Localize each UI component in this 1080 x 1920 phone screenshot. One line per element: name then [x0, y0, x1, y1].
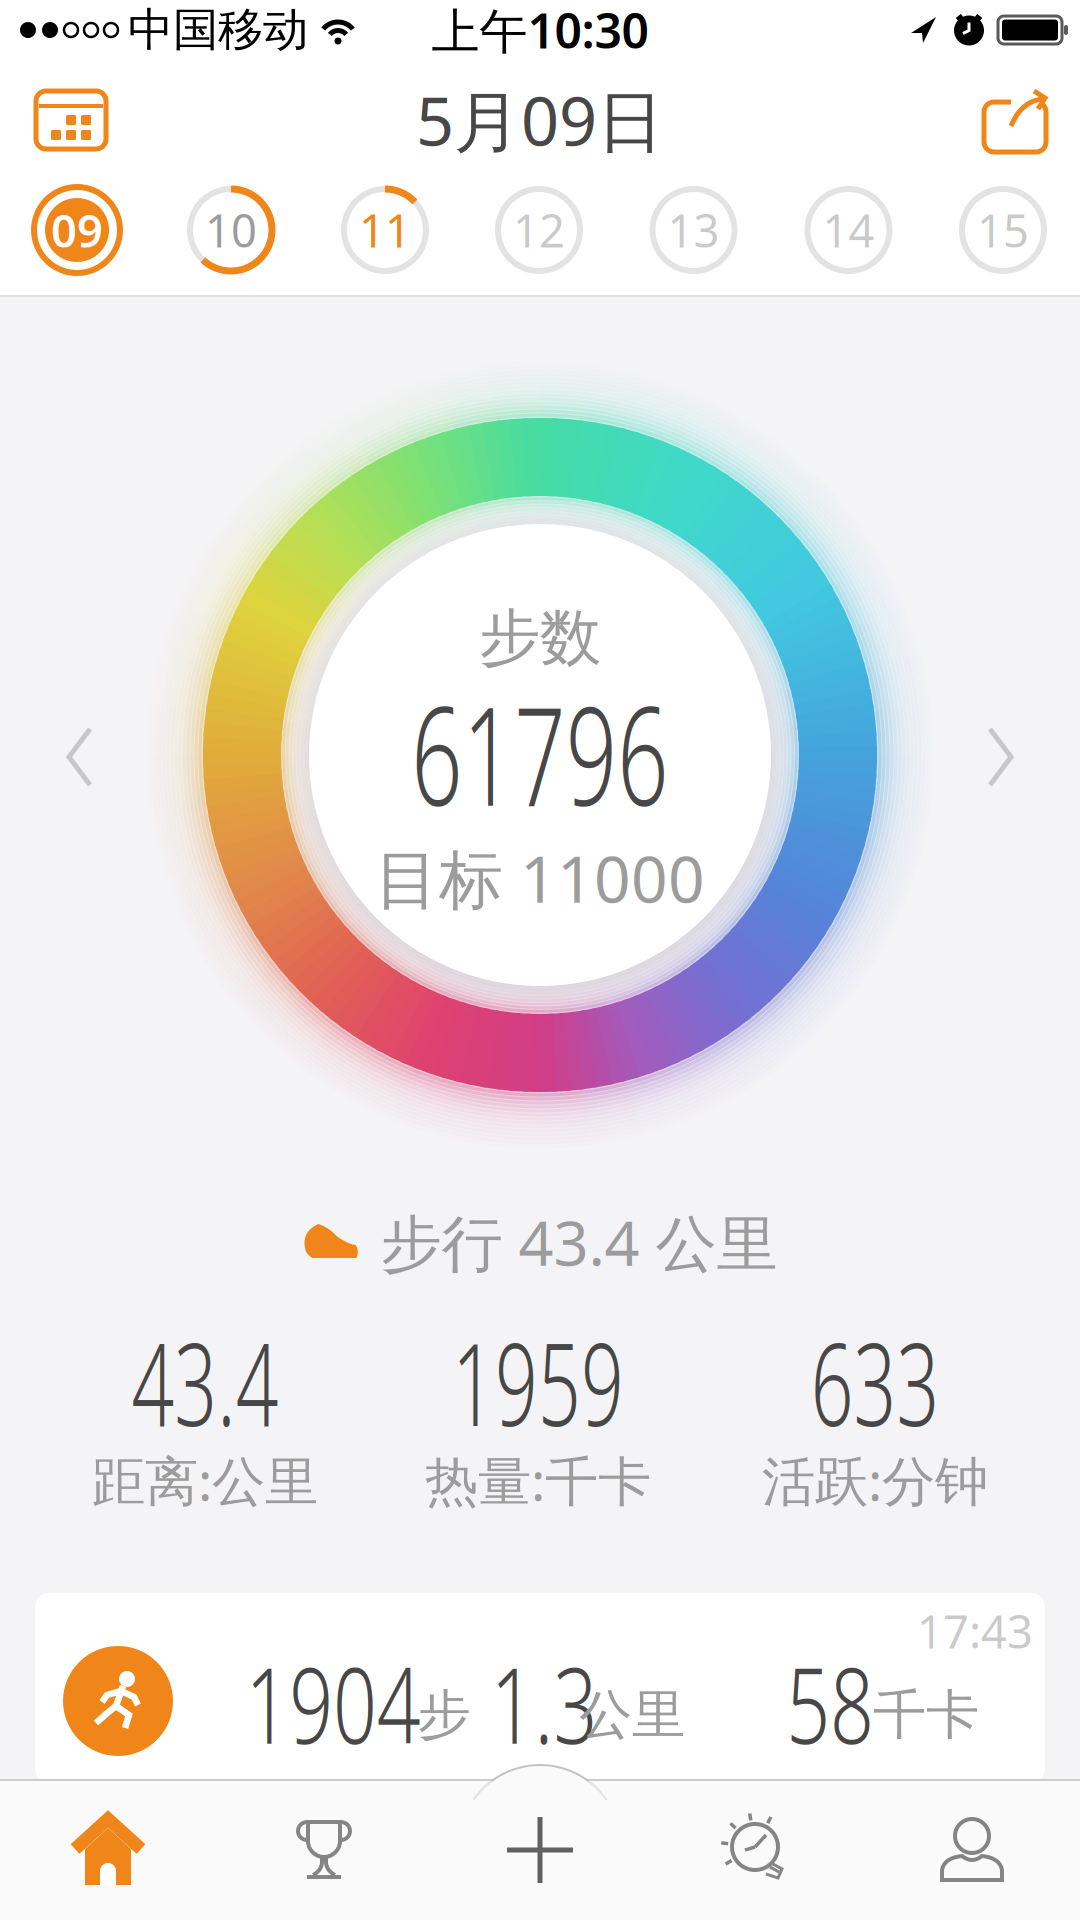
button[interactable] — [66, 727, 94, 787]
button[interactable]: 12 — [462, 179, 616, 295]
staticText: 公里 — [579, 1682, 685, 1748]
staticText: 58 — [770, 1633, 890, 1773]
staticText: 步行 43.4 公里 — [380, 1201, 777, 1283]
staticText: 1904 — [213, 1633, 453, 1773]
staticText: 10 — [205, 200, 257, 260]
button[interactable]: 11 — [308, 179, 462, 295]
button[interactable]: 15 — [926, 179, 1080, 295]
staticText: 千卡 — [873, 1682, 979, 1748]
staticText: 11 — [359, 200, 411, 260]
staticText: 目标 11000 — [375, 835, 705, 920]
staticText: 09 — [51, 200, 103, 260]
staticText: 61796 — [345, 663, 735, 843]
staticText: 1.3 — [471, 1633, 617, 1773]
staticText: 17:43 — [917, 1601, 1033, 1661]
staticText: 12 — [513, 200, 565, 260]
staticText: 43.4 — [93, 1307, 316, 1457]
staticText: 步 — [417, 1682, 470, 1748]
staticText: 15 — [977, 200, 1029, 260]
staticText: 上午10:30 — [431, 0, 648, 62]
button[interactable]: 09 — [0, 179, 154, 295]
button[interactable] — [0, 1779, 216, 1920]
button[interactable]: 13 — [616, 179, 771, 295]
staticText: 13 — [667, 200, 719, 260]
button[interactable] — [986, 727, 1014, 787]
button[interactable] — [216, 1779, 432, 1920]
staticText: 中国移动 — [128, 2, 308, 58]
button[interactable] — [648, 1779, 864, 1920]
staticText: 1959 — [408, 1307, 668, 1457]
button[interactable] — [864, 1779, 1080, 1920]
staticText: 14 — [822, 200, 874, 260]
staticText: 热量:千卡 — [425, 1445, 651, 1515]
button[interactable]: 10 — [154, 179, 308, 295]
button[interactable] — [432, 1779, 648, 1920]
button[interactable] — [35, 1593, 1045, 1783]
staticText: 活跃:分钟 — [762, 1445, 988, 1515]
staticText: 距离:公里 — [92, 1445, 318, 1515]
button[interactable] — [0, 91, 106, 149]
staticText: 5月09日 — [416, 76, 664, 164]
staticText: 633 — [777, 1307, 972, 1457]
button[interactable] — [984, 88, 1080, 152]
staticText: 步数 — [479, 600, 601, 676]
button[interactable]: 14 — [771, 179, 926, 295]
